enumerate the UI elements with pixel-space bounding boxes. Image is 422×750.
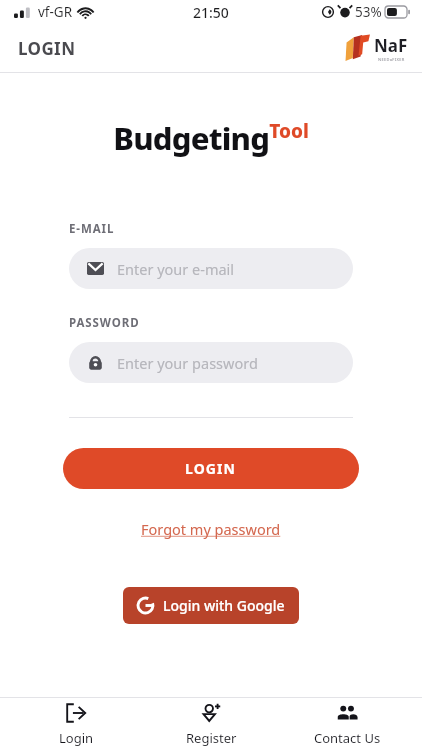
staticText: NaF <box>374 34 408 57</box>
staticText: PASSWORD <box>69 315 140 331</box>
staticText: NEEDaFIXER <box>378 57 405 62</box>
staticText: E-MAIL <box>69 221 115 237</box>
button[interactable]: Register <box>151 702 271 747</box>
button[interactable]: Login with Google <box>123 587 299 624</box>
button[interactable]: Contact Us <box>287 702 407 747</box>
staticText: Enter your password <box>117 353 258 373</box>
button[interactable]: Enter your password <box>69 342 353 383</box>
button[interactable]: Forgot my password <box>135 517 287 541</box>
button[interactable]: NaF logo <box>345 34 408 62</box>
staticText: LOGIN <box>185 459 237 478</box>
staticText: Enter your e-mail <box>117 259 235 279</box>
staticText: 21:50 <box>193 3 229 22</box>
staticText: Contact Us <box>314 729 381 747</box>
staticText: Register <box>186 729 237 747</box>
staticText: BudgetingTool <box>113 117 309 159</box>
staticText: Login <box>59 729 94 747</box>
staticText: LOGIN <box>18 37 76 60</box>
staticText: 53% <box>355 3 382 21</box>
button[interactable]: Enter your e-mail <box>69 248 353 289</box>
button[interactable]: Login <box>16 702 136 747</box>
button[interactable]: LOGIN <box>63 448 359 489</box>
staticText: Login with Google <box>163 596 285 615</box>
staticText: vf-GR <box>38 3 73 21</box>
